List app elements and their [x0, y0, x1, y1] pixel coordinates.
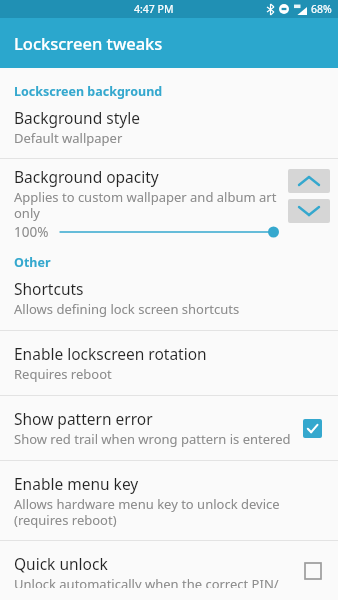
staticText: Show pattern error: [14, 408, 153, 429]
button[interactable]: Show pattern error: [0, 396, 338, 460]
staticText: Lockscreen background: [14, 83, 163, 100]
staticText: 68%: [311, 2, 332, 16]
staticText: Allows hardware menu key to unlock devic…: [14, 495, 328, 528]
staticText: Lockscreen tweaks: [14, 32, 163, 54]
button[interactable]: Decrease opacity: [288, 199, 330, 223]
staticText: Allows defining lock screen shortcuts: [14, 300, 240, 318]
staticText: Background style: [14, 107, 140, 128]
staticText: Requires reboot: [14, 365, 112, 383]
staticText: 4:47 PM: [134, 2, 174, 16]
button[interactable]: Enable menu key: [0, 461, 338, 540]
staticText: 100%: [14, 223, 49, 241]
staticText: Default wallpaper: [14, 129, 123, 147]
button[interactable]: Shortcuts: [0, 273, 338, 330]
staticText: Unlock automatically when the correct PI…: [14, 575, 279, 588]
staticText: Applies to custom wallpaper and album ar…: [14, 188, 282, 221]
button[interactable]: Background style: [0, 102, 338, 158]
staticText: Enable menu key: [14, 473, 139, 494]
button[interactable]: Show pattern error, enabled: [303, 419, 322, 438]
button[interactable]: Enable lockscreen rotation: [0, 331, 338, 395]
staticText: Enable lockscreen rotation: [14, 343, 207, 364]
staticText: Show red trail when wrong pattern is ent…: [14, 430, 291, 448]
button[interactable]: Quick unlock: [0, 541, 338, 600]
button[interactable]: Increase opacity: [288, 169, 330, 193]
staticText: Quick unlock: [14, 553, 108, 574]
button[interactable]: Quick unlock, disabled: [303, 561, 322, 580]
staticText: Background opacity: [14, 166, 159, 187]
button[interactable]: Background opacity: [0, 159, 338, 248]
staticText: Shortcuts: [14, 278, 84, 299]
staticText: Other: [14, 254, 51, 271]
